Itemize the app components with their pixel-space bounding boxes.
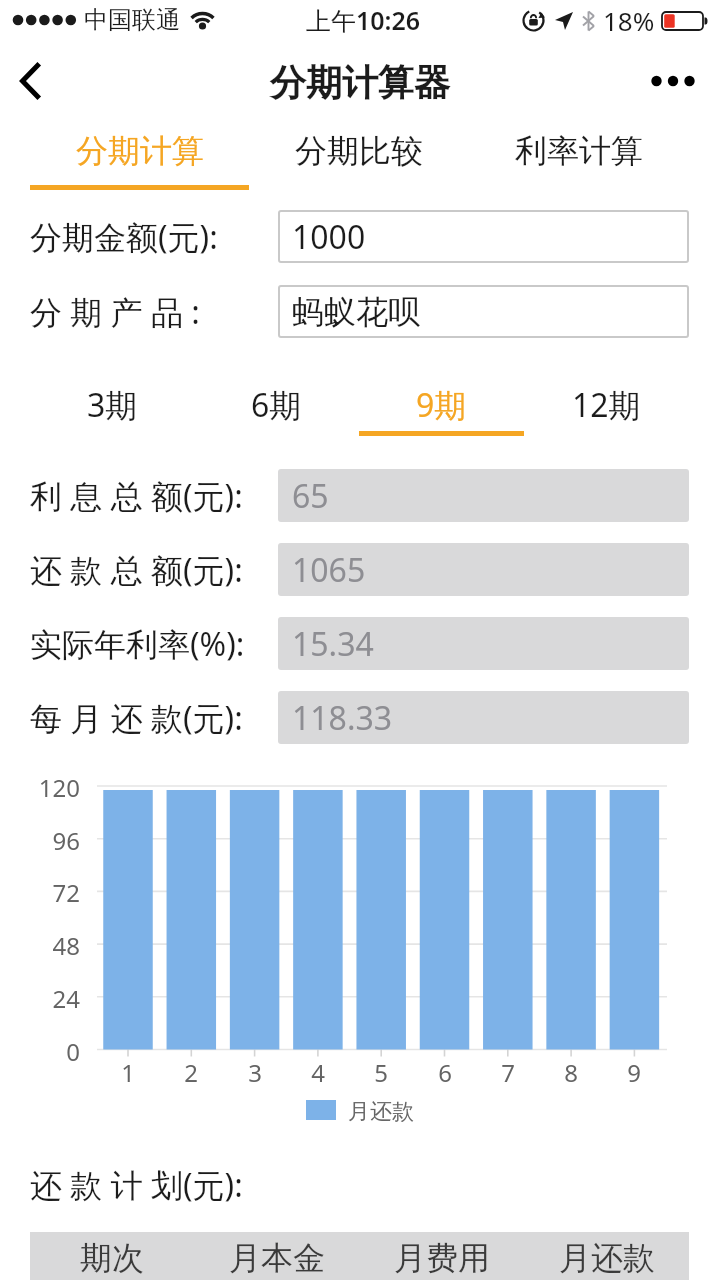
staticText: 中国联通 — [84, 5, 180, 35]
staticText: 1065 — [292, 548, 366, 592]
button[interactable]: 1000 — [278, 210, 689, 263]
button[interactable] — [8, 56, 52, 106]
staticText: 120 — [0, 771, 80, 804]
staticText: 72 — [0, 876, 80, 909]
staticText: 5 — [361, 1056, 401, 1089]
staticText: 3期 — [87, 383, 138, 427]
button[interactable]: 期次 — [30, 1232, 194, 1280]
staticText: 还 款 总 额(元): — [30, 548, 243, 592]
staticText: 每 月 还 款(元): — [30, 696, 243, 740]
staticText: 0 — [0, 1035, 80, 1068]
staticText: 6 — [425, 1056, 465, 1089]
staticText: 1000 — [292, 215, 366, 259]
button[interactable] — [645, 59, 701, 103]
button[interactable]: 12期 — [524, 376, 689, 436]
staticText: 分 期 产 品 : — [30, 290, 200, 334]
staticText: 48 — [0, 929, 80, 962]
staticText: 月还款 — [348, 1098, 414, 1122]
staticText: 利 息 总 额(元): — [30, 474, 243, 518]
staticText: 蚂蚁花呗 — [292, 292, 420, 332]
staticText: 2 — [171, 1056, 211, 1089]
staticText: 分期计算器 — [270, 60, 450, 105]
staticText: 月还款 — [559, 1238, 655, 1278]
button[interactable]: 月费用 — [359, 1232, 524, 1280]
staticText: 8 — [551, 1056, 591, 1089]
staticText: 15.34 — [292, 622, 374, 666]
button[interactable]: 6期 — [194, 376, 359, 436]
staticText: 还 款 计 划(元): — [30, 1163, 243, 1207]
staticText: 7 — [488, 1056, 528, 1089]
staticText: 分期金额(元): — [30, 215, 218, 259]
button[interactable]: 3期 — [30, 376, 194, 436]
staticText: 期次 — [80, 1238, 144, 1278]
staticText: 1 — [108, 1056, 148, 1089]
staticText: 上午10:26 — [306, 3, 421, 37]
staticText: 12期 — [572, 383, 641, 427]
staticText: 利率计算 — [515, 131, 643, 171]
staticText: 118.33 — [292, 696, 393, 740]
staticText: 分期计算 — [76, 131, 204, 171]
staticText: 9期 — [416, 383, 467, 427]
button[interactable]: 9期 — [359, 376, 524, 436]
staticText: 月费用 — [394, 1238, 490, 1278]
staticText: 24 — [0, 982, 80, 1015]
staticText: 4 — [298, 1056, 338, 1089]
staticText: 分期比较 — [295, 131, 423, 171]
button[interactable]: 月还款 — [524, 1232, 689, 1280]
staticText: 65 — [292, 474, 329, 518]
staticText: 18% — [603, 3, 655, 38]
button[interactable]: 分期比较 — [249, 115, 469, 190]
staticText: 月本金 — [229, 1238, 325, 1278]
staticText: 96 — [0, 824, 80, 857]
staticText: 6期 — [251, 383, 302, 427]
button[interactable]: 分期计算 — [30, 115, 249, 190]
staticText: 实际年利率(%): — [30, 622, 245, 666]
staticText: 9 — [614, 1056, 654, 1089]
button[interactable]: 利率计算 — [469, 115, 689, 190]
button[interactable]: 月本金 — [194, 1232, 359, 1280]
staticText: 3 — [235, 1056, 275, 1089]
button[interactable]: 蚂蚁花呗 — [278, 285, 689, 338]
